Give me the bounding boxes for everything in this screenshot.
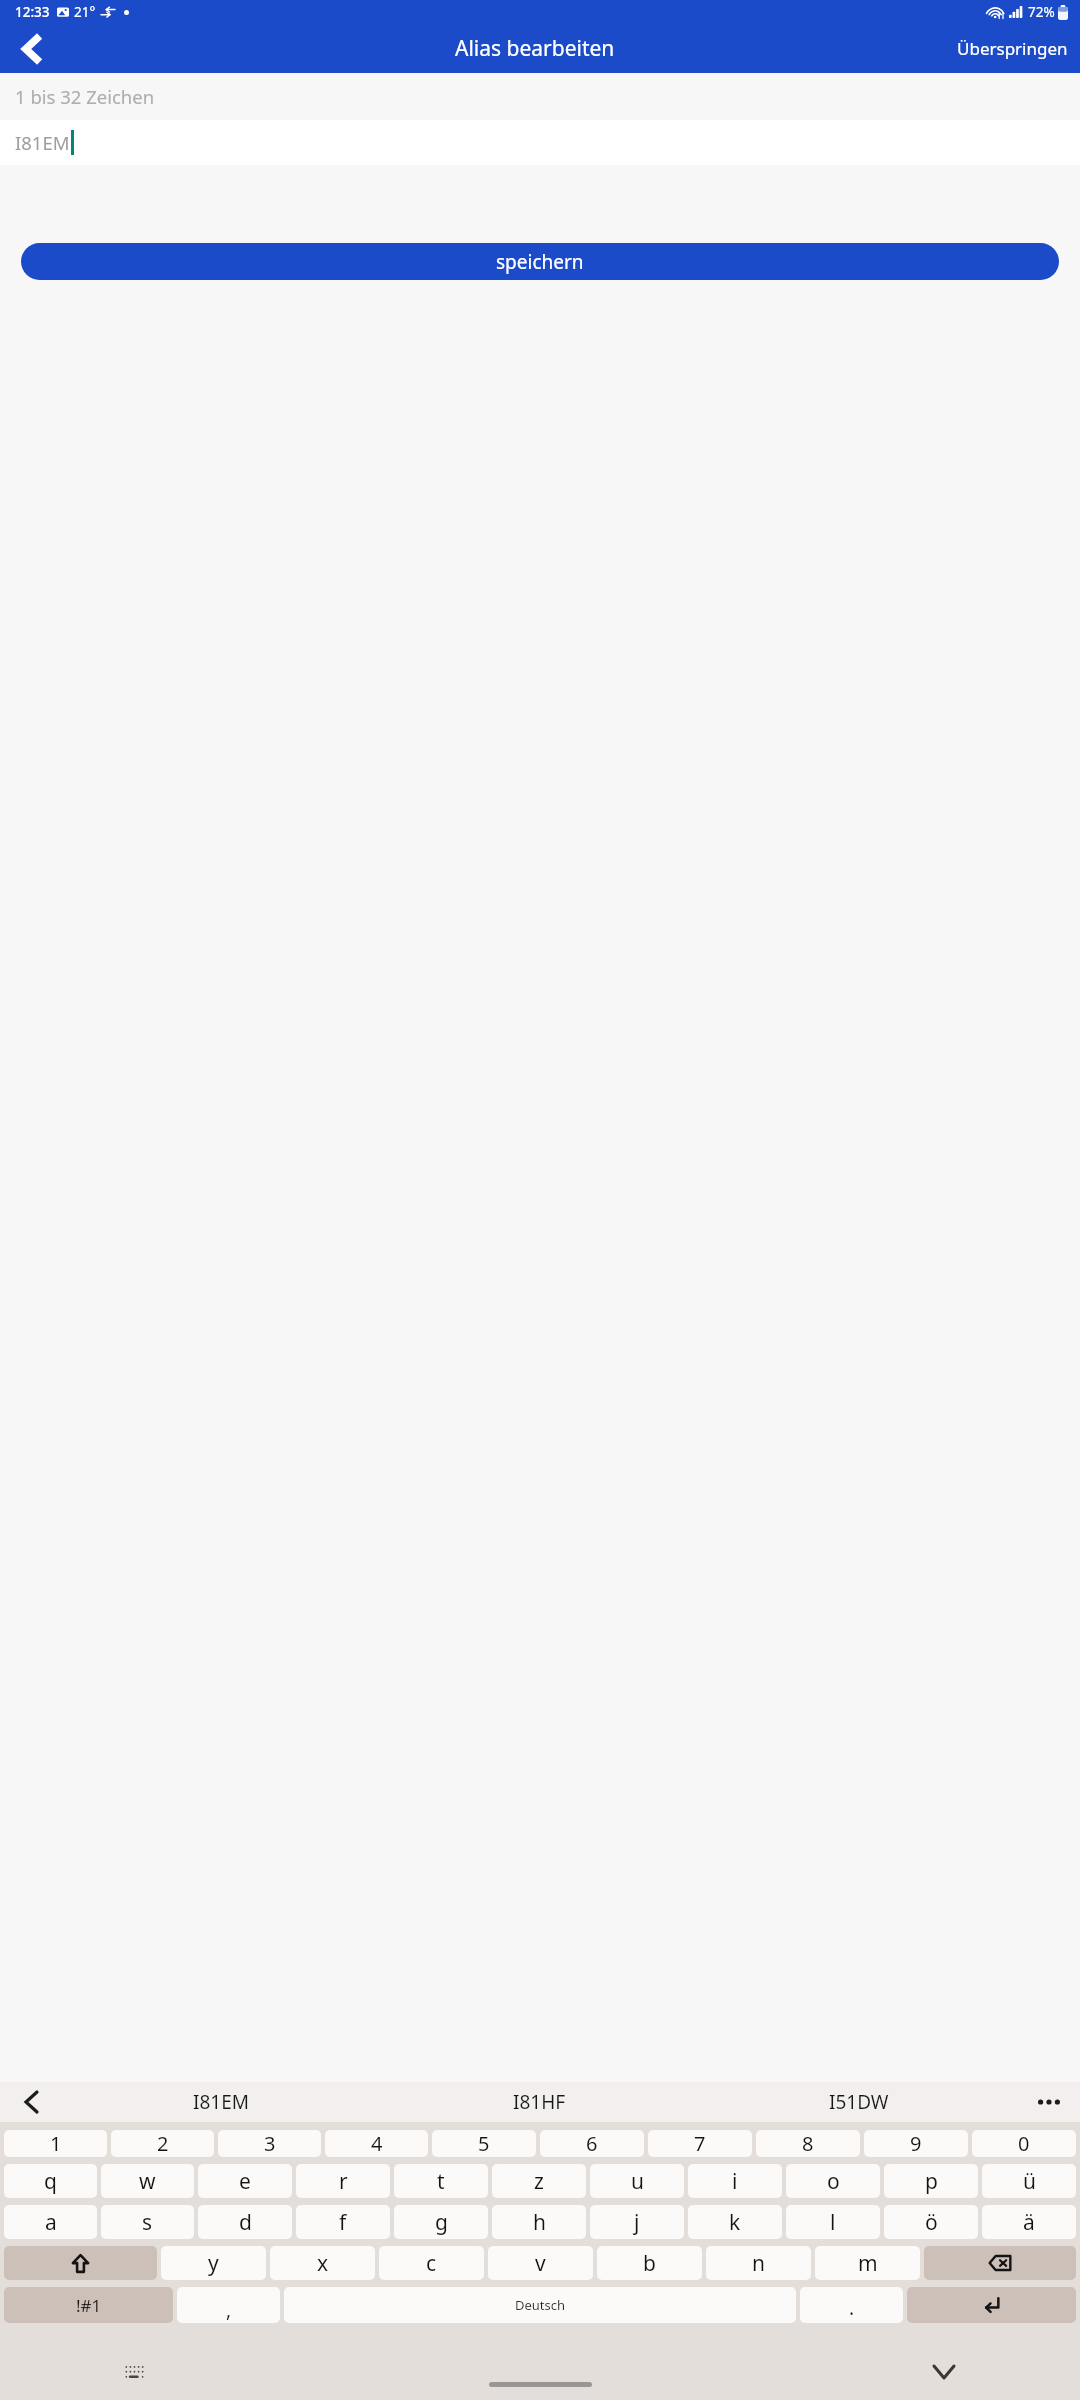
staticText: r (339, 2167, 348, 2196)
button[interactable]: g (394, 2205, 488, 2239)
staticText: 72% (1028, 3, 1055, 21)
staticText: 9 (910, 2130, 922, 2157)
button[interactable]: Eingabe (907, 2287, 1076, 2323)
staticText: a (45, 2208, 57, 2237)
button[interactable]: l (786, 2205, 880, 2239)
button[interactable]: 4 (325, 2130, 428, 2157)
button[interactable]: o (786, 2164, 880, 2198)
staticText: Deutsch (515, 2296, 566, 2314)
staticText: 3 (264, 2130, 276, 2157)
button[interactable]: 8 (756, 2130, 860, 2157)
button[interactable]: 0 (972, 2130, 1076, 2157)
staticText: e (239, 2167, 251, 2196)
button[interactable]: q (4, 2164, 97, 2198)
button[interactable]: 5 (432, 2130, 536, 2157)
staticText: s (142, 2208, 153, 2237)
button[interactable]: n (706, 2246, 811, 2280)
button[interactable]: Mehr Optionen (1018, 2082, 1080, 2122)
staticText: p (925, 2167, 938, 2196)
button[interactable]: c (379, 2246, 484, 2280)
staticText: 12:33 (15, 3, 50, 21)
button[interactable]: w (101, 2164, 194, 2198)
button[interactable]: h (492, 2205, 586, 2239)
button[interactable]: Zurück (8, 25, 56, 73)
button[interactable]: b (597, 2246, 702, 2280)
staticText: h (533, 2208, 546, 2237)
staticText: i (732, 2167, 738, 2196)
staticText: m (858, 2249, 878, 2278)
button[interactable]: I81HF (380, 2082, 699, 2122)
button[interactable]: Löschen (924, 2246, 1076, 2280)
staticText: ö (925, 2208, 938, 2237)
button[interactable]: 2 (111, 2130, 214, 2157)
staticText: n (752, 2249, 765, 2278)
staticText: j (634, 2208, 640, 2237)
staticText: c (426, 2249, 437, 2278)
button[interactable]: Tastatur wechseln (110, 2348, 158, 2396)
button[interactable]: I81EM (0, 120, 1080, 165)
button[interactable]: Alias bearbeiten (455, 34, 615, 63)
button[interactable]: m (815, 2246, 920, 2280)
button[interactable]: y (161, 2246, 266, 2280)
button[interactable]: p (884, 2164, 978, 2198)
button[interactable]: Vorherige Vorschläge (0, 2082, 62, 2122)
staticText: 1 bis 32 Zeichen (15, 84, 155, 109)
staticText: I51DW (829, 2089, 889, 2115)
button[interactable]: !#1 (4, 2287, 173, 2323)
button[interactable]: 9 (864, 2130, 968, 2157)
staticText: g (435, 2208, 448, 2237)
button[interactable]: r (296, 2164, 390, 2198)
staticText: 1 (50, 2130, 62, 2157)
button[interactable]: j (590, 2205, 684, 2239)
button[interactable]: , (177, 2287, 280, 2323)
button[interactable]: Überspringen (957, 37, 1080, 60)
staticText: 21° (74, 3, 96, 21)
staticText: t (437, 2167, 445, 2196)
staticText: k (729, 2208, 741, 2237)
button[interactable]: . (800, 2287, 903, 2323)
staticText: 7 (694, 2130, 706, 2157)
button[interactable]: ö (884, 2205, 978, 2239)
button[interactable]: 3 (218, 2130, 321, 2157)
staticText: f (339, 2208, 347, 2237)
button[interactable]: ü (982, 2164, 1076, 2198)
staticText: d (239, 2208, 252, 2237)
staticText: 0 (1018, 2130, 1030, 2157)
button[interactable]: d (198, 2205, 292, 2239)
staticText: q (44, 2167, 57, 2196)
staticText: speichern (496, 249, 584, 275)
button[interactable]: f (296, 2205, 390, 2239)
staticText: o (827, 2167, 840, 2196)
button[interactable]: u (590, 2164, 684, 2198)
button[interactable]: ä (982, 2205, 1076, 2239)
staticText: b (643, 2249, 656, 2278)
button[interactable]: Umschalttaste (4, 2246, 157, 2280)
button[interactable]: I81EM (62, 2082, 380, 2122)
staticText: 2 (157, 2130, 169, 2157)
button[interactable]: Deutsch (284, 2287, 796, 2323)
button[interactable]: v (488, 2246, 593, 2280)
button[interactable]: 1 (4, 2130, 107, 2157)
staticText: 4 (371, 2130, 383, 2157)
staticText: I81EM (15, 130, 70, 155)
staticText: , (226, 2297, 232, 2323)
staticText: 6 (586, 2130, 598, 2157)
button[interactable]: I51DW (699, 2082, 1018, 2122)
button[interactable]: t (394, 2164, 488, 2198)
button[interactable]: 7 (648, 2130, 752, 2157)
button[interactable]: speichern (21, 243, 1059, 280)
button[interactable]: Tastatur ausblenden (920, 2348, 968, 2396)
button[interactable]: x (270, 2246, 375, 2280)
staticText: y (208, 2249, 219, 2278)
button[interactable]: a (4, 2205, 97, 2239)
button[interactable]: 6 (540, 2130, 644, 2157)
button[interactable]: i (688, 2164, 782, 2198)
staticText: ü (1023, 2167, 1036, 2196)
button[interactable]: k (688, 2205, 782, 2239)
staticText: w (139, 2167, 156, 2196)
staticText: l (830, 2208, 836, 2237)
staticText: . (849, 2295, 855, 2321)
button[interactable]: e (198, 2164, 292, 2198)
button[interactable]: s (101, 2205, 194, 2239)
button[interactable]: z (492, 2164, 586, 2198)
